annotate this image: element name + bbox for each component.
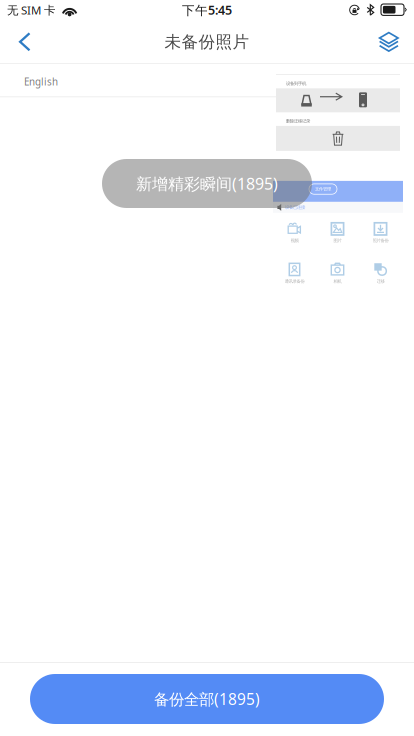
- staticText: 通讯录备份: [284, 278, 304, 284]
- staticText: 迁移: [376, 278, 384, 284]
- staticText: 下午5:45: [182, 1, 232, 19]
- staticText: 设备已连接: [285, 205, 305, 210]
- staticText: 无 SIM 卡: [7, 2, 55, 18]
- button[interactable]: Albums: [367, 20, 411, 64]
- button[interactable]: Back: [3, 20, 47, 64]
- staticText: 文件管理: [315, 186, 331, 192]
- staticText: 删除迁移记录: [286, 118, 310, 124]
- staticText: English: [24, 75, 58, 88]
- staticText: 视频: [290, 238, 298, 243]
- staticText: 新增精彩瞬间(1895): [136, 173, 278, 194]
- staticText: 相机: [333, 278, 341, 284]
- staticText: 图片: [333, 238, 341, 243]
- staticText: 备份全部(1895): [154, 688, 260, 710]
- staticText: 设备到手机: [286, 81, 306, 86]
- staticText: 照片备份: [372, 238, 388, 243]
- staticText: 未备份照片: [164, 32, 249, 52]
- button[interactable]: 备份全部(1895): [30, 674, 384, 724]
